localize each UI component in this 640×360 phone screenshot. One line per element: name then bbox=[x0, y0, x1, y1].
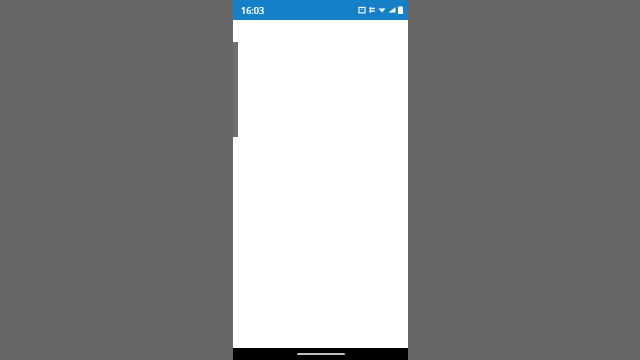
button[interactable]: Home gesture handle bbox=[297, 353, 345, 355]
staticText: 16:03 bbox=[241, 4, 265, 16]
